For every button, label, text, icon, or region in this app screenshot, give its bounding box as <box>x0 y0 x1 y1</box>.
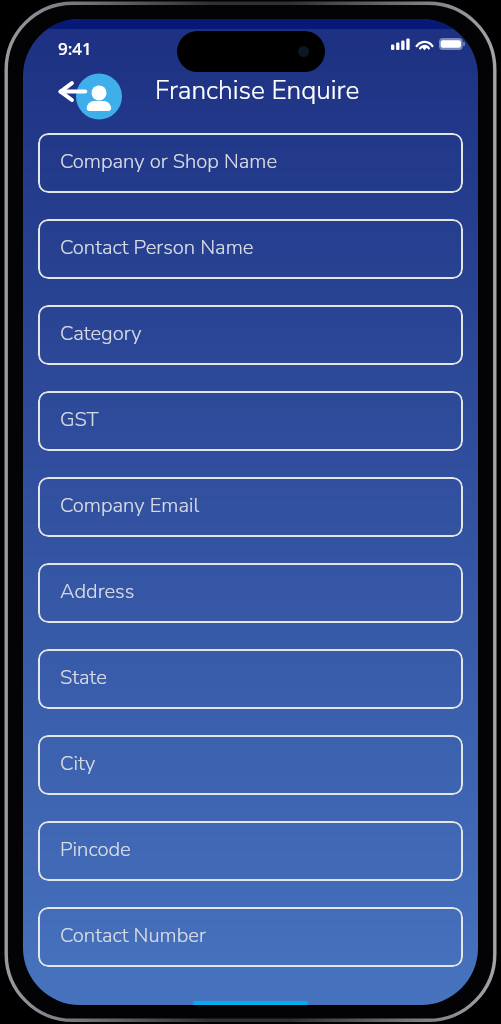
button[interactable]: Company Email <box>38 477 463 537</box>
staticText: Contact Person Name <box>60 234 254 262</box>
staticText: Company Email <box>60 492 200 520</box>
staticText: Company or Shop Name <box>60 148 278 176</box>
staticText: Contact Number <box>60 922 206 950</box>
button[interactable]: Contact Number <box>38 907 463 967</box>
button[interactable]: Company or Shop Name <box>38 133 463 193</box>
staticText: State <box>60 664 107 692</box>
staticText: City <box>60 750 96 778</box>
button[interactable]: City <box>38 735 463 795</box>
button[interactable]: Address <box>38 563 463 623</box>
staticText: Address <box>60 578 135 606</box>
button[interactable]: GST <box>38 391 463 451</box>
button[interactable]: Category <box>38 305 463 365</box>
button[interactable]: State <box>38 649 463 709</box>
button[interactable]: Back <box>55 71 127 122</box>
button[interactable]: Pincode <box>38 821 463 881</box>
staticText: Category <box>60 320 142 348</box>
button[interactable]: Contact Person Name <box>38 219 463 279</box>
staticText: Franchise Enquire <box>155 73 360 109</box>
staticText: GST <box>60 406 99 434</box>
staticText: 9:41 <box>58 37 92 60</box>
staticText: Pincode <box>60 836 131 864</box>
